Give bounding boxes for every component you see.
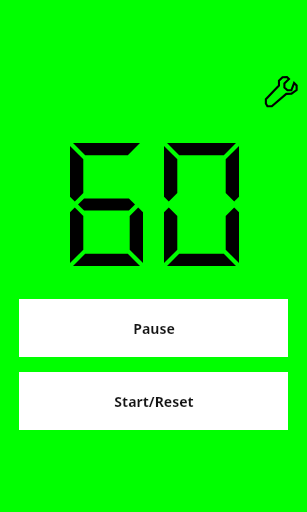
button[interactable]: Settings — [264, 74, 298, 108]
button[interactable]: Start/Reset — [19, 372, 288, 430]
staticText: Start/Reset — [114, 392, 194, 411]
button[interactable]: Pause — [19, 299, 288, 357]
staticText: Pause — [133, 319, 175, 338]
